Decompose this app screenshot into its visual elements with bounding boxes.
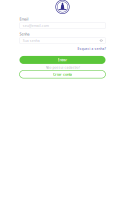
staticText: Entrar (57, 57, 67, 62)
staticText: Email (19, 17, 28, 22)
button[interactable]: Esqueci a senha? (19, 47, 105, 51)
button[interactable]: Entrar (19, 56, 105, 64)
staticText: Criar conta (53, 72, 72, 77)
staticText: Senha (19, 32, 29, 37)
staticText: Não possui cadastro? (45, 65, 79, 70)
staticText: Esqueci a senha? (77, 47, 105, 51)
staticText: Sua senha (23, 38, 40, 43)
staticText: seu@email.com (23, 23, 49, 28)
button[interactable]: Criar conta (19, 70, 105, 78)
